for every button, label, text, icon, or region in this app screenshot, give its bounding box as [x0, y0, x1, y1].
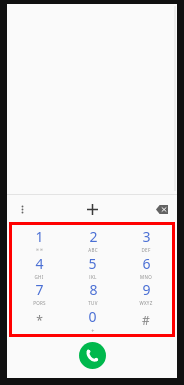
button[interactable]: 9	[119, 280, 172, 305]
button[interactable]: 5	[66, 254, 119, 279]
staticText: +	[91, 327, 95, 332]
staticText: 1	[35, 227, 44, 246]
staticText: GHI	[34, 274, 44, 279]
staticText: 2	[89, 227, 98, 246]
staticText: *	[36, 312, 43, 328]
button[interactable]: *	[12, 307, 66, 332]
button[interactable]: Add	[80, 197, 104, 221]
button[interactable]: 1	[12, 227, 66, 252]
button[interactable]: 8	[66, 280, 119, 305]
button[interactable]: Call	[79, 342, 106, 369]
staticText: ABC	[88, 247, 98, 252]
staticText: 7	[35, 280, 44, 299]
button[interactable]: 4	[12, 254, 66, 279]
button[interactable]: 0	[66, 307, 119, 332]
staticText: 5	[88, 254, 97, 273]
button[interactable]: 2	[66, 227, 119, 252]
staticText: 3	[142, 227, 151, 246]
staticText: PQRS	[33, 300, 46, 305]
staticText: 0	[88, 307, 97, 326]
staticText: #	[142, 312, 150, 328]
staticText: DEF	[141, 247, 151, 252]
button[interactable]: 7	[12, 280, 66, 305]
staticText: MNO	[140, 274, 152, 279]
staticText: 6	[142, 254, 151, 273]
staticText: ∞∞	[35, 247, 44, 252]
button[interactable]: More options	[11, 198, 33, 220]
staticText: WXYZ	[139, 300, 153, 305]
staticText: TUV	[88, 300, 98, 305]
staticText: JKL	[89, 274, 97, 279]
staticText: 9	[142, 280, 151, 299]
staticText: 4	[35, 254, 44, 273]
button[interactable]: 6	[119, 254, 172, 279]
button[interactable]: Backspace	[150, 197, 174, 221]
button[interactable]: 3	[119, 227, 172, 252]
button[interactable]: #	[119, 307, 172, 332]
staticText: 8	[89, 280, 98, 299]
